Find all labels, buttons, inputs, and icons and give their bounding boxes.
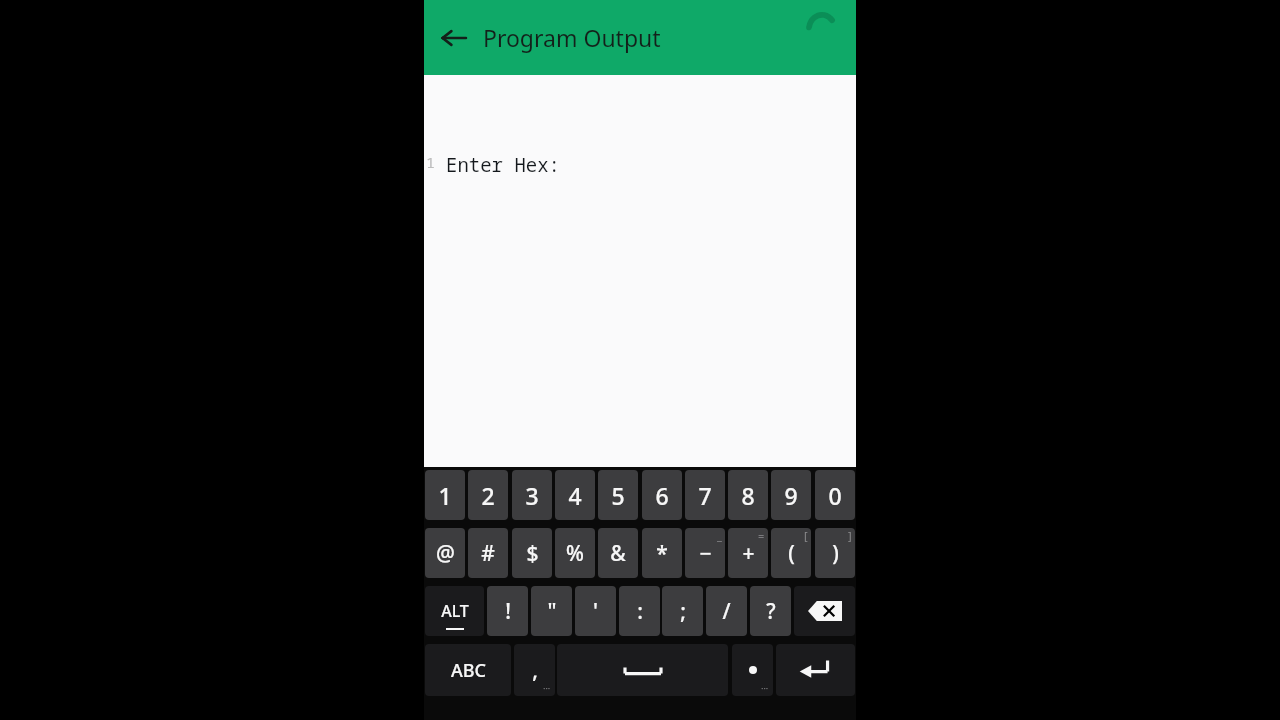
button[interactable]: ! xyxy=(487,586,528,636)
staticText: 2 xyxy=(481,480,495,511)
button[interactable]: ? xyxy=(750,586,791,636)
button[interactable]: 1 xyxy=(425,470,465,520)
staticText: 7 xyxy=(698,480,712,511)
button[interactable]: Space xyxy=(557,644,728,696)
staticText: % xyxy=(566,539,584,568)
staticText: 0 xyxy=(828,480,842,511)
staticText: 3 xyxy=(525,480,539,511)
staticText: 1 xyxy=(438,480,452,511)
button[interactable]: # xyxy=(468,528,508,578)
staticText: & xyxy=(610,539,626,568)
button[interactable]: ' xyxy=(575,586,616,636)
button[interactable]: " xyxy=(531,586,572,636)
staticText: 6 xyxy=(655,480,669,511)
staticText: / xyxy=(722,597,731,626)
button[interactable]: + xyxy=(728,528,768,578)
button[interactable]: : xyxy=(619,586,660,636)
staticText: − xyxy=(699,539,712,568)
staticText: 4 xyxy=(568,480,582,511)
staticText: _ xyxy=(717,528,722,543)
staticText: ' xyxy=(593,597,598,626)
staticText: Enter Hex: xyxy=(446,152,561,178)
staticText: @ xyxy=(436,539,455,568)
button[interactable]: , xyxy=(514,644,555,696)
button[interactable]: ABC xyxy=(425,644,511,696)
button[interactable]: 8 xyxy=(728,470,768,520)
staticText: , xyxy=(532,656,538,685)
button[interactable]: ··· xyxy=(732,644,773,696)
button[interactable]: $ xyxy=(512,528,552,578)
staticText: ··· xyxy=(761,682,769,694)
staticText: 1 xyxy=(426,152,436,172)
staticText: ··· xyxy=(543,682,551,694)
button[interactable]: ALT xyxy=(425,586,484,636)
staticText: Program Output xyxy=(483,22,661,53)
staticText: ( xyxy=(788,539,795,568)
staticText: 5 xyxy=(611,480,625,511)
staticText: ? xyxy=(766,597,776,626)
button[interactable]: 3 xyxy=(512,470,552,520)
staticText: * xyxy=(656,539,668,568)
button[interactable]: & xyxy=(598,528,638,578)
button[interactable]: 7 xyxy=(685,470,725,520)
button[interactable]: 6 xyxy=(642,470,682,520)
staticText: ABC xyxy=(451,658,486,683)
staticText: ; xyxy=(680,597,686,626)
staticText: 8 xyxy=(741,480,755,511)
button[interactable]: 2 xyxy=(468,470,508,520)
button[interactable]: Back xyxy=(432,14,476,62)
staticText: ALT xyxy=(441,600,469,622)
button[interactable]: % xyxy=(555,528,595,578)
button[interactable]: @ xyxy=(425,528,465,578)
staticText: ] xyxy=(848,528,852,543)
button[interactable]: 4 xyxy=(555,470,595,520)
button[interactable]: − xyxy=(685,528,725,578)
button[interactable]: 9 xyxy=(771,470,811,520)
staticText: + xyxy=(742,539,755,568)
button[interactable]: 0 xyxy=(815,470,855,520)
staticText: : xyxy=(637,597,643,626)
staticText: " xyxy=(547,597,557,626)
staticText: 9 xyxy=(784,480,798,511)
staticText: = xyxy=(758,528,765,543)
button[interactable]: Enter xyxy=(776,644,855,696)
button[interactable]: Backspace xyxy=(794,586,855,636)
button[interactable]: ; xyxy=(662,586,703,636)
button[interactable]: * xyxy=(642,528,682,578)
button[interactable]: 5 xyxy=(598,470,638,520)
staticText: $ xyxy=(526,539,539,568)
staticText: # xyxy=(481,539,495,568)
button[interactable]: ( xyxy=(771,528,811,578)
staticText: ! xyxy=(505,597,511,626)
staticText: ) xyxy=(832,539,839,568)
staticText: [ xyxy=(804,528,808,543)
button[interactable]: / xyxy=(706,586,747,636)
button[interactable]: ) xyxy=(815,528,855,578)
